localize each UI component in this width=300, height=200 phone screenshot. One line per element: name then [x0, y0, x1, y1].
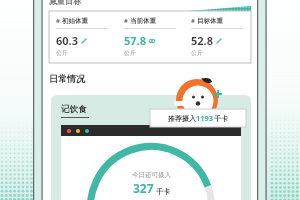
staticText: 记饮食 [61, 104, 87, 115]
staticText: 初始体重 [62, 17, 88, 25]
staticText: # [56, 17, 62, 25]
staticText: 52.8 [191, 33, 213, 48]
staticText: 推荐摄入 [168, 114, 196, 123]
staticText: 公斤 [56, 49, 68, 57]
staticText: 公斤 [191, 49, 203, 57]
button[interactable]: # [49, 11, 251, 63]
staticText: 今日还可摄入 [132, 171, 171, 179]
staticText: 57.8 [124, 33, 146, 48]
staticText: 目标体重 [197, 17, 223, 25]
staticText: 1193 [196, 113, 214, 123]
button[interactable]: 记饮食 [51, 95, 251, 200]
staticText: 千卡 [214, 114, 228, 123]
staticText: 公斤 [124, 49, 136, 57]
staticText: # [124, 17, 130, 25]
staticText: 60.3 [56, 33, 78, 48]
staticText: 327 [133, 180, 154, 196]
staticText: 千卡 [156, 187, 170, 196]
button[interactable]: 推荐摄入 [150, 109, 246, 127]
staticText: 减重目标 [49, 0, 81, 6]
other: Mascot [171, 76, 223, 122]
staticText: 日常情况 [49, 73, 85, 84]
staticText: 当前体重 [130, 17, 156, 25]
staticText: # [191, 17, 197, 25]
